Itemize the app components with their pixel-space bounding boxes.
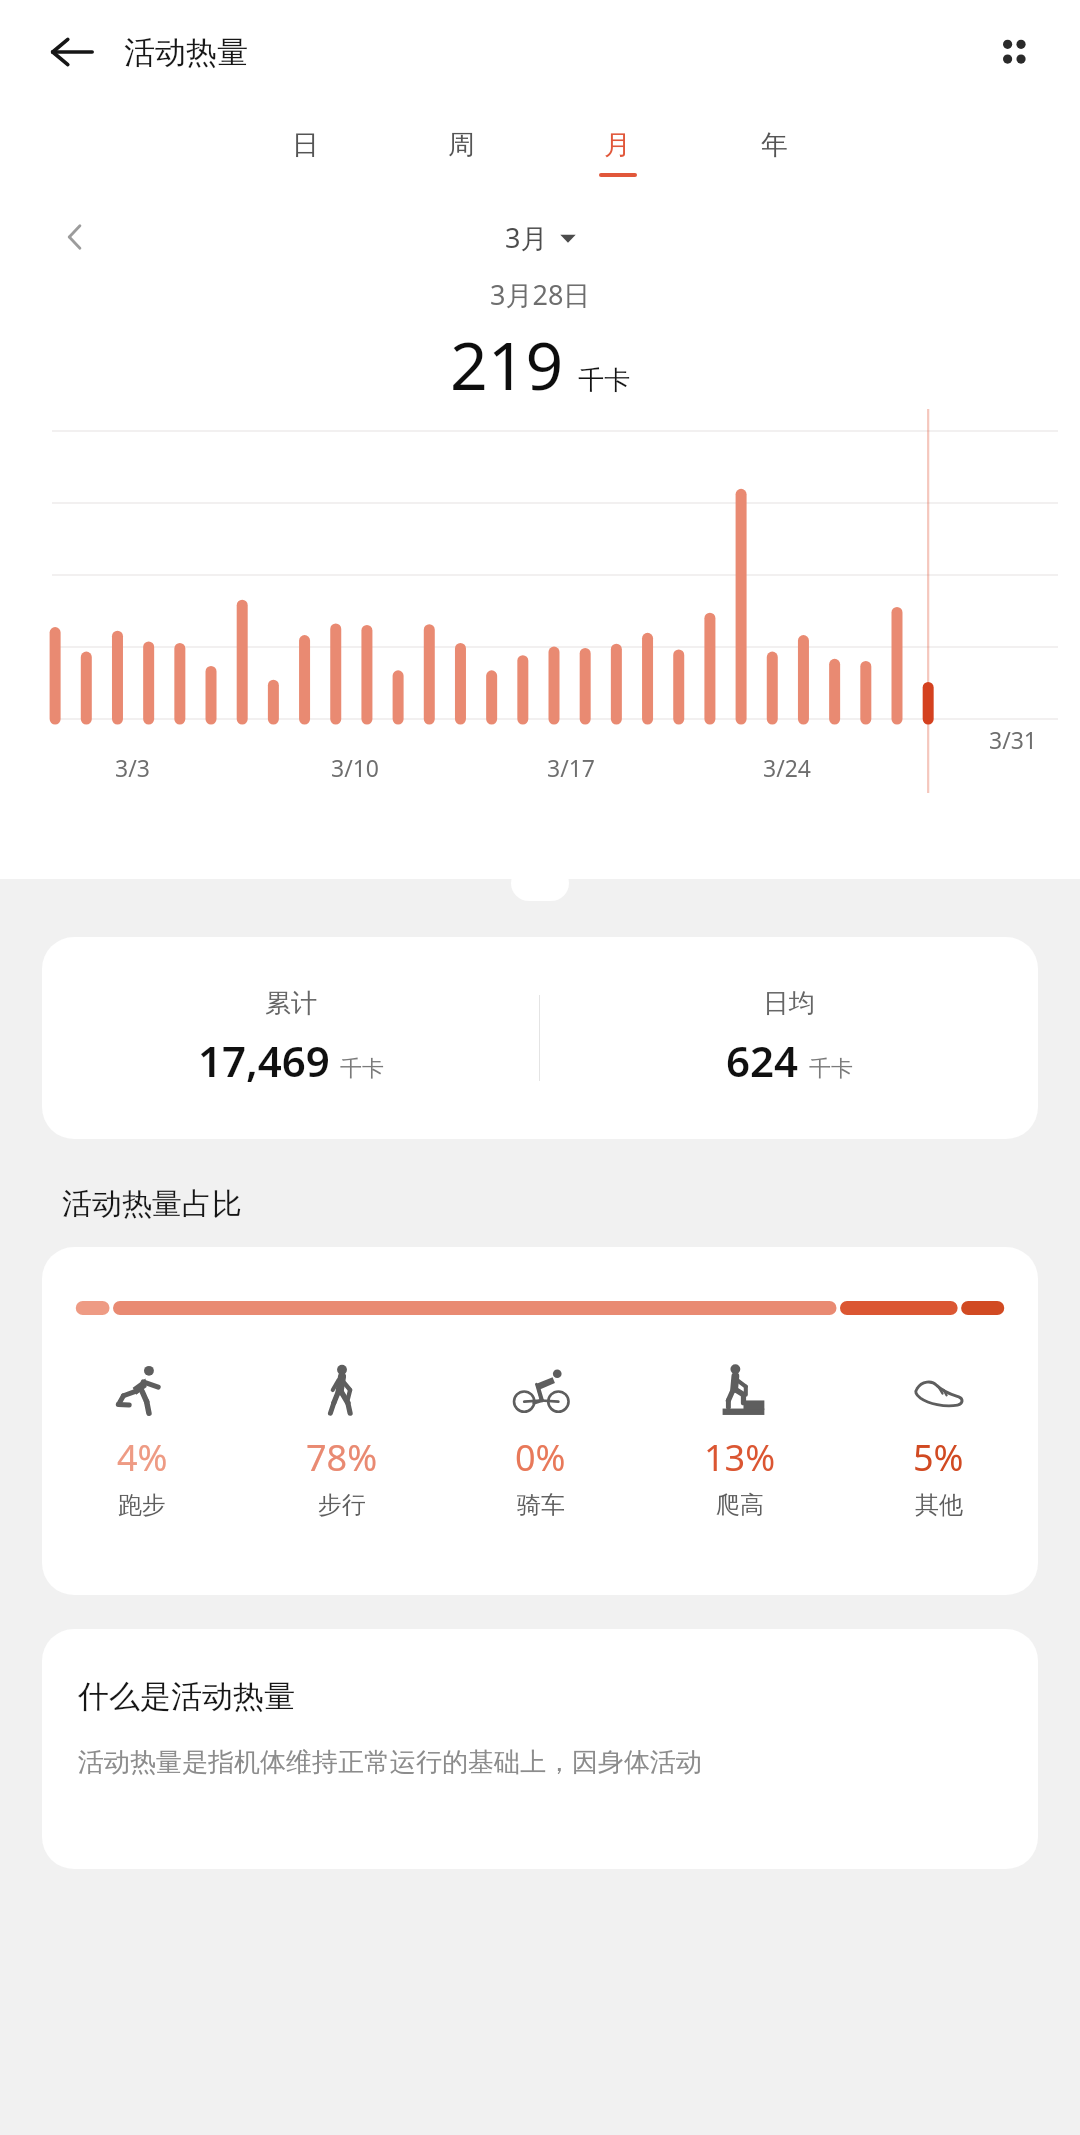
staticText: 3月28日 — [490, 276, 591, 313]
button[interactable]: 累计 — [42, 937, 1038, 1139]
staticText: 3/17 — [547, 752, 596, 783]
button[interactable]: 78% — [242, 1361, 441, 1520]
staticText: 5% — [913, 1433, 964, 1482]
staticText: 千卡 — [578, 364, 630, 397]
staticText: 骑车 — [517, 1490, 565, 1520]
staticText: 17,469 — [198, 1032, 330, 1089]
staticText: 624 — [726, 1032, 799, 1089]
button[interactable]: Back — [40, 20, 104, 84]
staticText: 4% — [117, 1433, 168, 1482]
button[interactable]: 3月 — [505, 219, 576, 256]
staticText: 3/31 — [989, 724, 1038, 755]
staticText: 什么是活动热量 — [78, 1677, 295, 1716]
button[interactable]: 日 — [227, 104, 383, 200]
staticText: 月 — [604, 128, 631, 162]
staticText: 跑步 — [118, 1490, 166, 1520]
staticText: 千卡 — [340, 1055, 384, 1083]
staticText: 日 — [292, 128, 319, 162]
button[interactable]: Expand — [511, 865, 569, 901]
staticText: 其他 — [915, 1490, 963, 1520]
button[interactable]: 4% — [42, 1247, 1038, 1595]
staticText: 78% — [306, 1433, 378, 1482]
staticText: 3/10 — [331, 752, 380, 783]
staticText: 千卡 — [809, 1055, 853, 1083]
staticText: 0% — [515, 1433, 566, 1482]
button[interactable]: 年 — [696, 104, 853, 200]
staticText: 219 — [450, 319, 564, 409]
staticText: 周 — [448, 128, 475, 162]
staticText: 3/24 — [763, 752, 812, 783]
staticText: 累计 — [265, 987, 317, 1020]
staticText: 3月 — [505, 219, 548, 256]
button[interactable]: 月 — [539, 104, 696, 200]
staticText: 爬高 — [716, 1490, 764, 1520]
staticText: 3/3 — [115, 752, 150, 783]
button[interactable]: 周 — [383, 104, 539, 200]
button[interactable]: 13% — [640, 1361, 839, 1520]
staticText: 活动热量是指机体维持正常运行的基础上，因身体活动 — [78, 1746, 702, 1779]
button[interactable]: More options — [980, 18, 1048, 86]
button[interactable]: 什么是活动热量 — [42, 1629, 1038, 1869]
button[interactable]: 0% — [441, 1361, 640, 1520]
button[interactable]: Previous month — [48, 209, 104, 265]
staticText: 步行 — [318, 1490, 366, 1520]
staticText: 活动热量 — [124, 33, 248, 72]
staticText: 年 — [761, 128, 788, 162]
button[interactable]: 5% — [839, 1361, 1038, 1520]
button[interactable]: 4% — [42, 1361, 242, 1520]
staticText: 活动热量占比 — [62, 1185, 242, 1223]
staticText: 13% — [704, 1433, 776, 1482]
staticText: 日均 — [763, 987, 815, 1020]
